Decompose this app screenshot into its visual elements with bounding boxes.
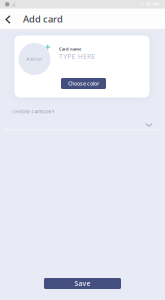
staticText: CHOOSE CATEGORY	[12, 109, 54, 114]
staticText: Choose color	[68, 80, 99, 87]
staticText: Add icon	[26, 56, 42, 62]
button[interactable]: CHOOSE CATEGORY	[0, 104, 165, 130]
button[interactable]: Add icon	[18, 43, 50, 75]
staticText: Add card	[23, 13, 63, 25]
staticText: Save	[74, 279, 90, 288]
button[interactable]: Back	[0, 10, 16, 29]
button[interactable]: Choose color	[61, 78, 106, 89]
staticText: Card name	[59, 46, 81, 52]
staticText: TYPE HERE	[59, 52, 95, 61]
button[interactable]: Save	[44, 278, 121, 289]
